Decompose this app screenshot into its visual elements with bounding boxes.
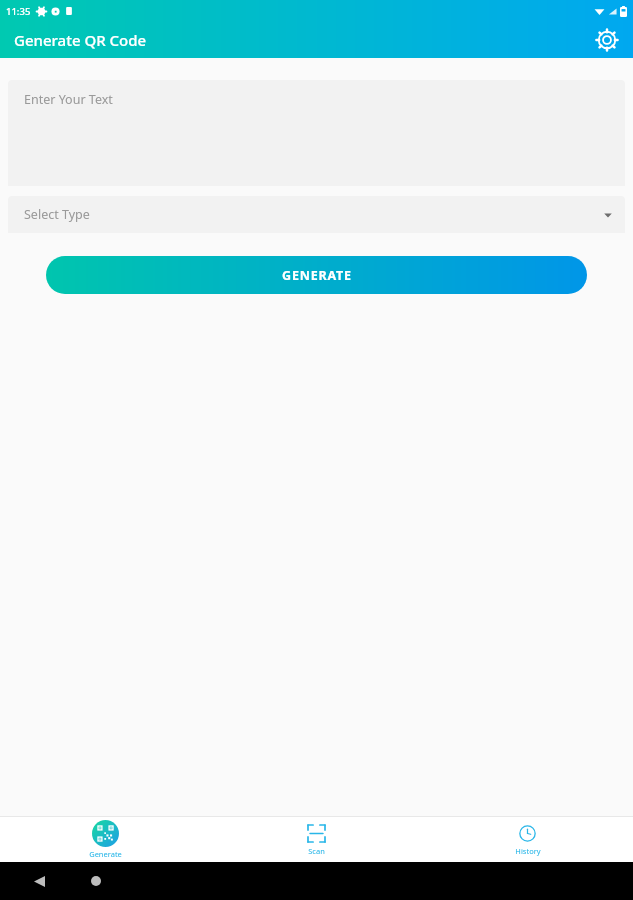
- staticText: Scan: [308, 846, 325, 856]
- staticText: History: [515, 846, 541, 856]
- button[interactable]: Enter Your Text: [8, 80, 625, 186]
- button[interactable]: Scan: [211, 816, 422, 862]
- staticText: Select Type: [24, 206, 90, 223]
- button[interactable]: Select Type: [8, 196, 625, 233]
- button[interactable]: Home: [83, 868, 109, 894]
- button[interactable]: Settings: [591, 24, 623, 56]
- button[interactable]: GENERATE: [46, 256, 587, 294]
- button[interactable]: Generate: [0, 816, 211, 862]
- staticText: Enter Your Text: [24, 91, 113, 108]
- staticText: Generate QR Code: [14, 30, 147, 50]
- staticText: GENERATE: [282, 267, 352, 284]
- button[interactable]: Back: [26, 868, 52, 894]
- button[interactable]: History: [422, 816, 633, 862]
- staticText: Generate: [89, 849, 122, 859]
- staticText: 11:35: [6, 5, 31, 18]
